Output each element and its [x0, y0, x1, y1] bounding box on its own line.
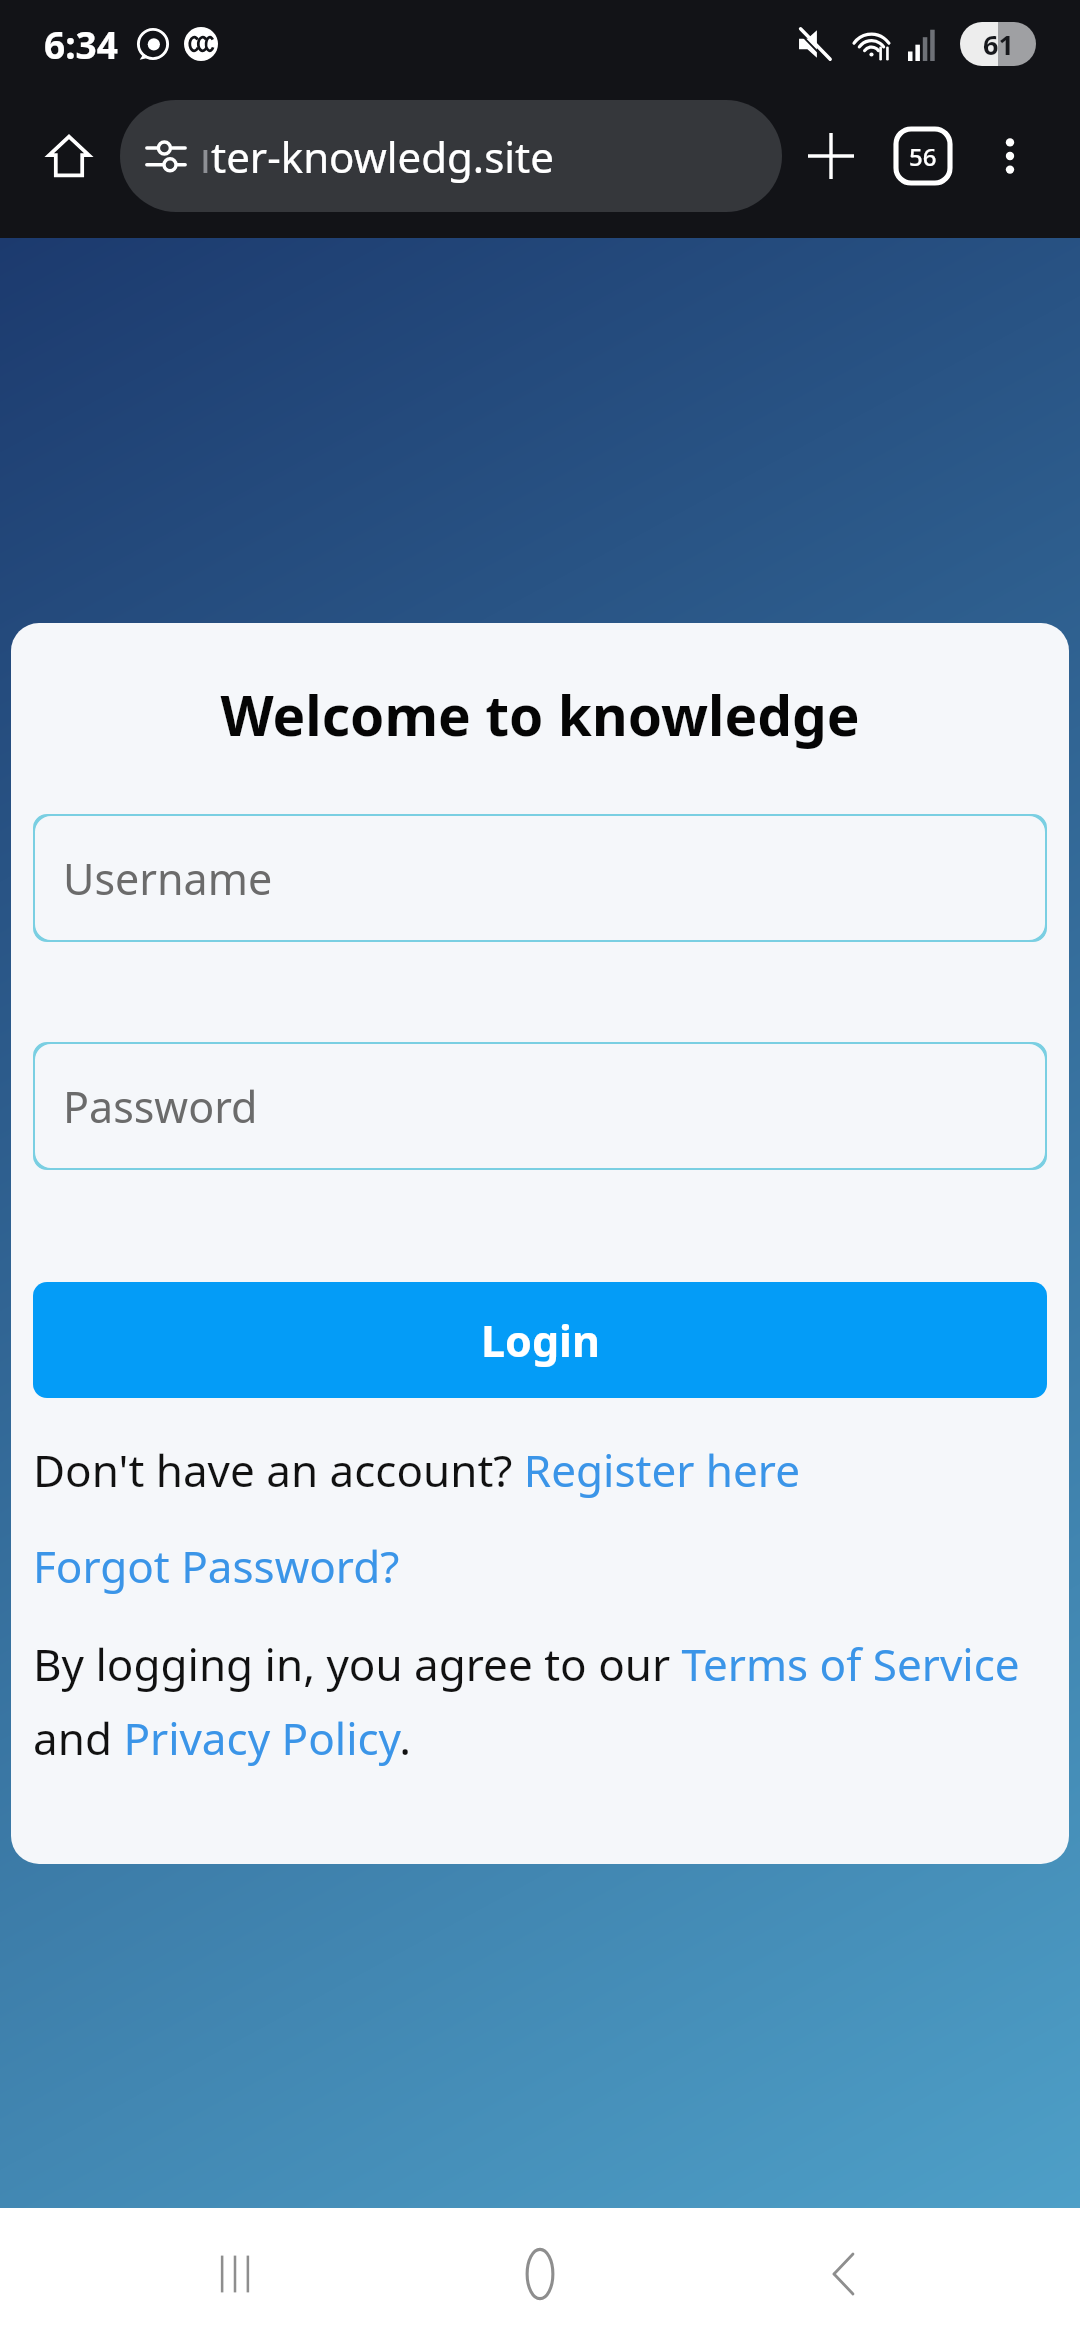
staticText: Username: [63, 849, 273, 908]
button[interactable]: Tabs: 56: [880, 113, 966, 199]
button[interactable]: Don't have an account? Register here: [33, 1440, 1047, 1500]
staticText: Welcome to knowledge: [33, 677, 1047, 752]
button[interactable]: Recent apps: [165, 2208, 305, 2340]
button[interactable]: Home: [30, 117, 108, 195]
button[interactable]: More options: [970, 116, 1050, 196]
staticText: ter-knowledg.site: [211, 128, 554, 185]
button[interactable]: New tab: [788, 113, 874, 199]
staticText: ı: [200, 128, 211, 185]
button[interactable]: Back: [775, 2208, 915, 2340]
button[interactable]: By logging in, you agree to our Terms of…: [33, 1634, 1047, 1768]
button[interactable]: Username: [33, 814, 1047, 942]
staticText: Login: [481, 1311, 600, 1370]
staticText: 6:34: [44, 19, 118, 69]
staticText: 56: [909, 140, 937, 173]
button[interactable]: ı: [120, 100, 782, 212]
button[interactable]: Password: [33, 1042, 1047, 1170]
staticText: Password: [63, 1077, 258, 1136]
button[interactable]: Login: [33, 1282, 1047, 1398]
staticText: 61: [983, 26, 1014, 63]
button[interactable]: Forgot Password?: [33, 1536, 400, 1596]
button[interactable]: Home: [470, 2208, 610, 2340]
